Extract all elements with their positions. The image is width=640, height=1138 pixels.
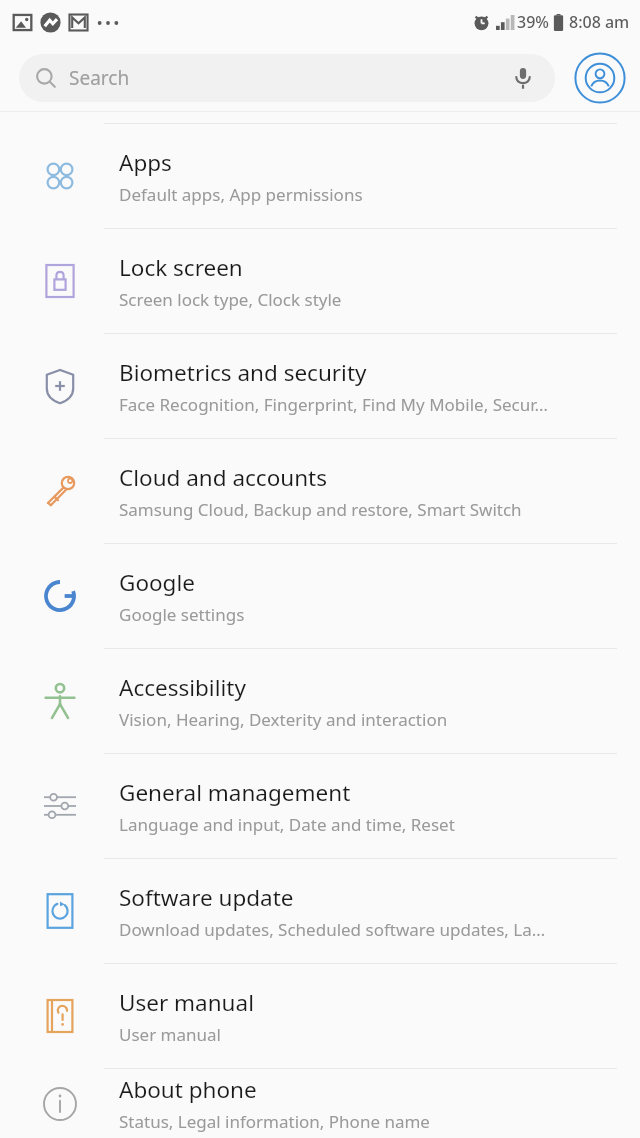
button[interactable]: Biometrics and security <box>0 334 640 438</box>
button[interactable]: Cloud and accounts <box>0 439 640 543</box>
staticText: Google <box>119 567 195 598</box>
staticText: Biometrics and security <box>119 357 367 388</box>
staticText: Search <box>69 65 130 91</box>
staticText: Accessibility <box>119 672 246 703</box>
button[interactable]: About phone <box>0 1069 640 1138</box>
button[interactable]: Voice search <box>505 60 541 96</box>
staticText: Software update <box>119 882 294 913</box>
button[interactable]: Account <box>574 52 626 104</box>
button[interactable]: Google <box>0 544 640 648</box>
staticText: 8:08 am <box>569 11 630 33</box>
button[interactable]: Accessibility <box>0 649 640 753</box>
button[interactable]: Apps <box>0 124 640 228</box>
staticText: Apps <box>119 147 172 178</box>
button[interactable]: Search <box>19 54 555 102</box>
staticText: Screen lock type, Clock style <box>119 288 342 311</box>
staticText: Download updates, Scheduled software upd… <box>119 918 546 941</box>
staticText: 39% <box>517 11 549 33</box>
button[interactable]: Lock screen <box>0 229 640 333</box>
staticText: User manual <box>119 987 254 1018</box>
staticText: Status, Legal information, Phone name <box>119 1110 430 1133</box>
staticText: Samsung Cloud, Backup and restore, Smart… <box>119 498 522 521</box>
staticText: Vision, Hearing, Dexterity and interacti… <box>119 708 448 731</box>
staticText: User manual <box>119 1023 221 1046</box>
staticText: Language and input, Date and time, Reset <box>119 813 455 836</box>
staticText: Face Recognition, Fingerprint, Find My M… <box>119 393 548 416</box>
button[interactable]: User manual <box>0 964 640 1068</box>
staticText: Cloud and accounts <box>119 462 327 493</box>
staticText: Lock screen <box>119 252 243 283</box>
staticText: Default apps, App permissions <box>119 183 363 206</box>
staticText: Google settings <box>119 603 245 626</box>
staticText: General management <box>119 777 351 808</box>
button[interactable]: General management <box>0 754 640 858</box>
button[interactable]: Software update <box>0 859 640 963</box>
staticText: About phone <box>119 1074 257 1105</box>
